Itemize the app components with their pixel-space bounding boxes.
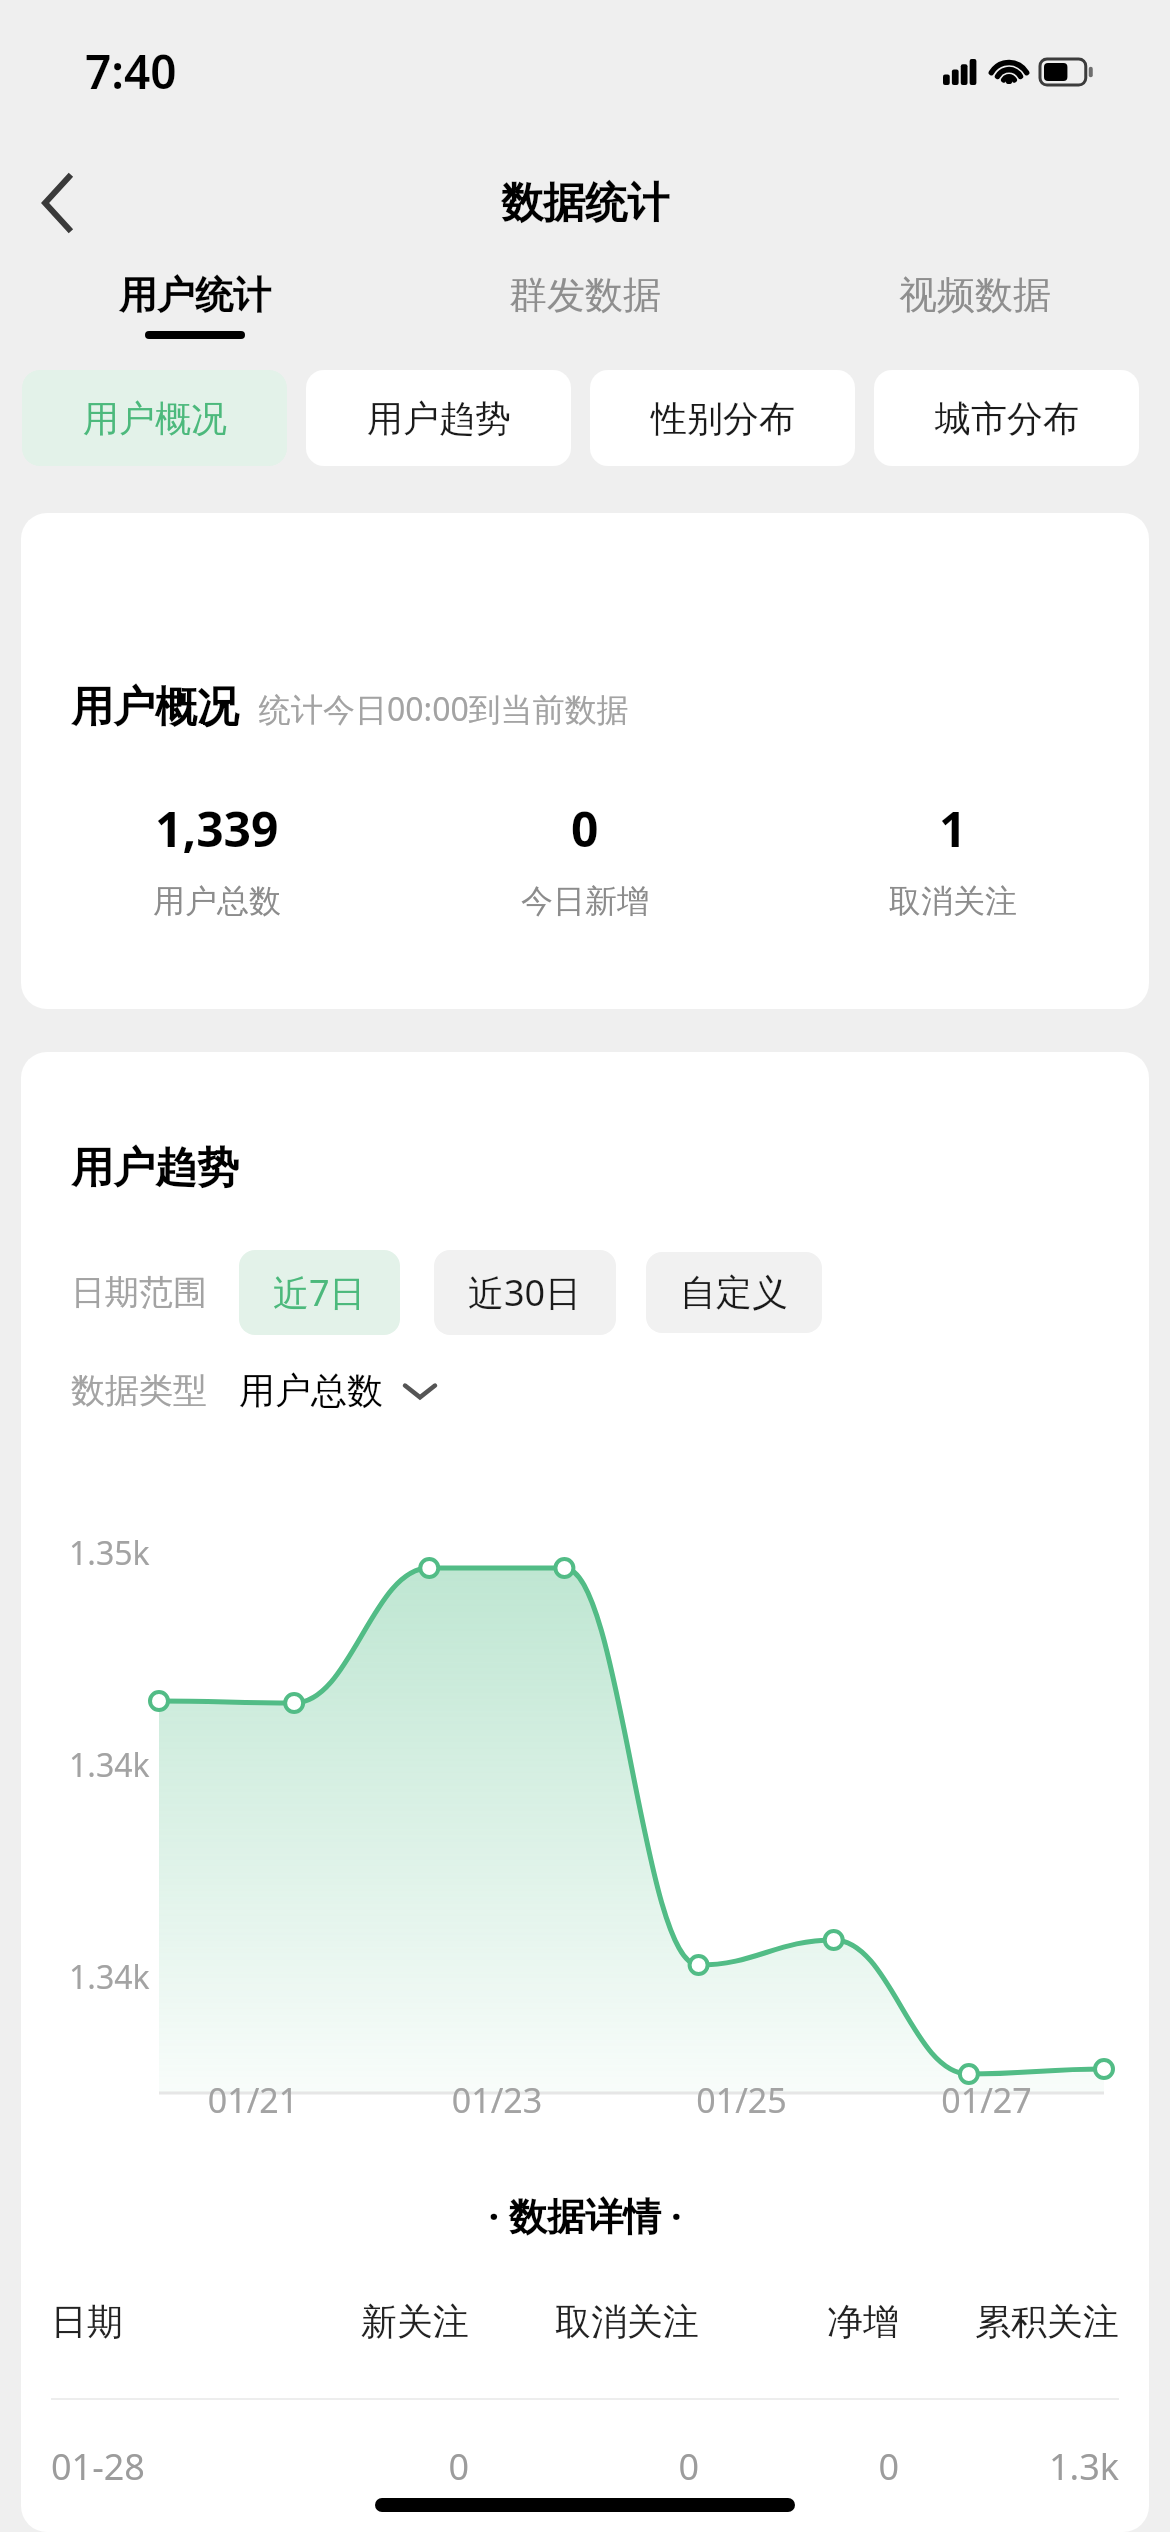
button[interactable]: 用户趋势	[306, 370, 571, 466]
staticText: 新关注	[270, 2299, 469, 2344]
staticText: 01/21	[131, 2077, 375, 2123]
staticText: 01/25	[619, 2077, 864, 2123]
staticText: 群发数据	[509, 271, 661, 319]
staticText: 1.3k	[899, 2442, 1119, 2491]
staticText: 01-28	[51, 2442, 270, 2491]
staticText: 1	[939, 796, 967, 861]
staticText: 城市分布	[935, 396, 1079, 441]
staticText: 用户统计	[119, 271, 271, 319]
staticText: 用户趋势	[367, 396, 511, 441]
staticText: 今日新增	[521, 881, 649, 921]
button[interactable]: 自定义	[646, 1252, 822, 1333]
button[interactable]: 用户统计	[0, 256, 390, 354]
button[interactable]: 近7日	[239, 1250, 400, 1335]
staticText: 用户趋势	[71, 1142, 239, 1195]
button[interactable]: 1	[769, 796, 1137, 921]
staticText: 日期范围	[71, 1271, 207, 1314]
button[interactable]: 城市分布	[874, 370, 1139, 466]
staticText: 自定义	[680, 1270, 788, 1315]
staticText: 1.34k	[69, 1743, 150, 1787]
staticText: 7:40	[85, 40, 177, 103]
staticText: 净增	[699, 2299, 899, 2344]
button[interactable]: 群发数据	[390, 256, 780, 354]
staticText: 1.35k	[69, 1531, 150, 1575]
staticText: 0	[270, 2442, 469, 2491]
staticText: 视频数据	[899, 271, 1051, 319]
staticText: 数据统计	[501, 177, 669, 230]
staticText: 用户总数	[153, 881, 281, 921]
staticText: · 数据详情 ·	[21, 2189, 1149, 2241]
button[interactable]: Back	[20, 165, 96, 241]
button[interactable]: 近30日	[434, 1250, 616, 1335]
button[interactable]: 用户概况	[22, 370, 287, 466]
staticText: 用户总数	[239, 1368, 383, 1413]
staticText: 0	[571, 796, 599, 861]
staticText: 0	[699, 2442, 899, 2491]
staticText: 性别分布	[651, 396, 795, 441]
button[interactable]: 性别分布	[590, 370, 855, 466]
staticText: 用户概况	[83, 396, 227, 441]
staticText: 数据类型	[71, 1369, 207, 1412]
staticText: 近7日	[273, 1268, 366, 1317]
staticText: 0	[469, 2442, 699, 2491]
staticText: 用户概况	[71, 681, 239, 734]
button[interactable]: 视频数据	[780, 256, 1170, 354]
staticText: 近30日	[468, 1268, 582, 1317]
staticText: 日期	[51, 2299, 270, 2344]
staticText: 取消关注	[889, 881, 1017, 921]
button[interactable]: 0	[401, 796, 769, 921]
staticText: 取消关注	[469, 2299, 699, 2344]
staticText: 累积关注	[899, 2299, 1119, 2344]
staticText: 1.34k	[69, 1955, 150, 1999]
button[interactable]: 1,339	[33, 796, 401, 921]
staticText: 1,339	[155, 796, 279, 861]
staticText: 01/27	[864, 2077, 1109, 2123]
button[interactable]: 数据类型	[71, 1368, 1149, 1413]
button[interactable]: 01-28	[51, 2442, 1119, 2491]
staticText: 统计今日00:00到当前数据	[259, 687, 629, 731]
staticText: 01/23	[375, 2077, 619, 2123]
